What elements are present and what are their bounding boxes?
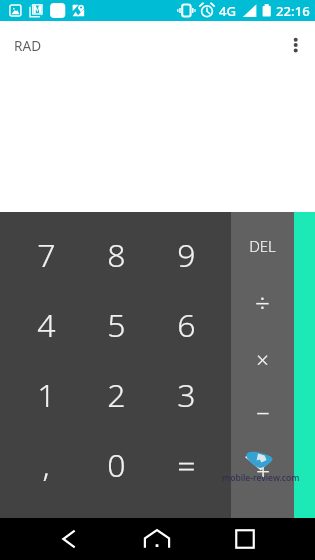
button[interactable]: 8 (81, 220, 151, 290)
button[interactable]: 1 (11, 360, 81, 430)
staticText: = (177, 443, 196, 487)
button[interactable]: DEL (231, 217, 294, 274)
button[interactable]: 7 (11, 220, 81, 290)
button[interactable]: Back (45, 518, 93, 560)
button[interactable]: 0 (81, 430, 151, 500)
staticText: RAD (14, 36, 42, 55)
button[interactable]: ÷ (231, 273, 294, 330)
button[interactable]: 3 (151, 360, 221, 430)
staticText: , (42, 443, 50, 487)
staticText: × (256, 344, 269, 374)
button[interactable]: 9 (151, 220, 221, 290)
staticText: DEL (249, 236, 276, 256)
button[interactable]: 2 (81, 360, 151, 430)
staticText: 2 (107, 373, 126, 417)
staticText: 9 (177, 233, 196, 277)
staticText: − (256, 396, 270, 429)
button[interactable]: = (151, 430, 221, 500)
button[interactable]: Home (133, 518, 181, 560)
staticText: 7 (37, 233, 56, 277)
button[interactable]: RAD (14, 21, 42, 70)
staticText: 0 (107, 443, 126, 487)
button[interactable]: More options (271, 21, 315, 70)
button[interactable]: Equals (294, 212, 315, 518)
staticText: 8 (107, 233, 126, 277)
staticText: 4G (219, 2, 237, 20)
staticText: 4 (37, 303, 56, 347)
button[interactable]: 6 (151, 290, 221, 360)
button[interactable]: 4 (11, 290, 81, 360)
staticText: 3 (177, 373, 196, 417)
staticText: mobile-review.com (222, 472, 300, 484)
button[interactable]: × (231, 330, 294, 387)
button[interactable]: + (231, 442, 294, 499)
button[interactable]: Recent apps (221, 518, 269, 560)
staticText: 6 (177, 303, 196, 347)
button[interactable]: , (11, 430, 81, 500)
button[interactable]: 5 (81, 290, 151, 360)
button[interactable]: − (231, 384, 294, 441)
staticText: + (256, 454, 270, 487)
staticText: 22:16 (276, 2, 310, 20)
staticText: 1 (37, 373, 56, 417)
staticText: 5 (107, 303, 126, 347)
staticText: ÷ (255, 284, 270, 319)
